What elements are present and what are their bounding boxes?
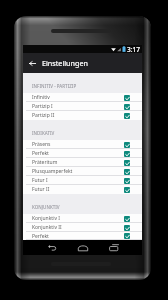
button[interactable]: Plusquamperfekt xyxy=(23,167,142,176)
button[interactable]: Konjunktiv I xyxy=(23,214,142,223)
staticText: Perfekt xyxy=(32,233,49,240)
staticText: Infinitiv xyxy=(32,94,50,101)
button[interactable]: Perfekt xyxy=(23,232,142,240)
button[interactable]: Infinitiv xyxy=(23,93,142,102)
staticText: INDIKATIV xyxy=(32,130,55,136)
staticText: Perfekt xyxy=(32,150,49,157)
button[interactable]: Präteritum xyxy=(23,158,142,167)
button[interactable]: Konjunktiv II xyxy=(23,223,142,232)
button[interactable]: Startbildschirm xyxy=(73,240,92,255)
staticText: Einstellungen xyxy=(42,58,88,68)
button[interactable]: Zurück xyxy=(23,53,42,73)
staticText: Plusquamperfekt xyxy=(32,168,73,175)
button[interactable]: Präsens xyxy=(23,140,142,149)
button[interactable]: Perfekt xyxy=(23,149,142,158)
staticText: KONJUNKTIV xyxy=(32,204,60,210)
button[interactable]: Partizip I xyxy=(23,102,142,111)
staticText: Präteritum xyxy=(32,159,58,166)
staticText: INFINITIV - PARTIZIP xyxy=(32,83,77,89)
button[interactable]: Futur II xyxy=(23,185,142,194)
staticText: 3:17 xyxy=(127,45,140,53)
button[interactable]: Zurück xyxy=(42,240,61,255)
button[interactable]: Futur I xyxy=(23,176,142,185)
staticText: Präsens xyxy=(32,141,51,148)
staticText: Futur II xyxy=(32,186,50,193)
staticText: Konjunktiv I xyxy=(32,215,60,222)
button[interactable]: Übersicht xyxy=(104,240,123,255)
staticText: Partizip II xyxy=(32,112,55,119)
staticText: Futur I xyxy=(32,177,48,184)
button[interactable]: Partizip II xyxy=(23,111,142,120)
staticText: Konjunktiv II xyxy=(32,224,62,231)
staticText: Partizip I xyxy=(32,103,53,110)
